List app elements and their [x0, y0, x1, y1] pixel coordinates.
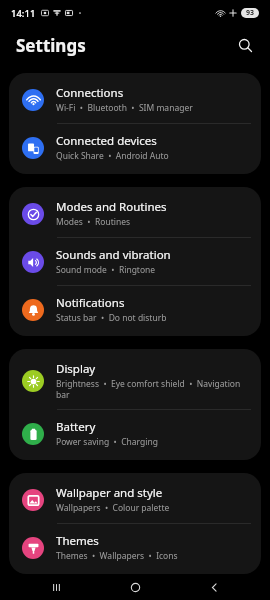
staticText: Display	[56, 361, 96, 377]
staticText: Settings	[16, 34, 86, 57]
staticText: Themes • Wallpapers • Icons	[56, 550, 178, 562]
staticText: Brightness • Eye comfort shield • Naviga…	[56, 378, 249, 400]
staticText: Notifications	[56, 295, 125, 311]
button[interactable]: Search	[231, 31, 259, 59]
staticText: Sounds and vibration	[56, 247, 171, 263]
staticText: Wallpapers • Colour palette	[56, 502, 170, 514]
staticText: Battery	[56, 419, 96, 435]
staticText: Wallpaper and style	[56, 485, 163, 501]
staticText: Wi-Fi • Bluetooth • SIM manager	[56, 102, 193, 114]
staticText: Sound mode • Ringtone	[56, 264, 156, 276]
button[interactable]: Connections	[9, 76, 261, 123]
staticText: 93	[246, 8, 255, 18]
button[interactable]: Sounds and vibration	[9, 238, 261, 285]
staticText: 14:11	[11, 7, 36, 20]
button[interactable]: Battery	[9, 410, 261, 457]
button[interactable]: Back	[191, 574, 237, 600]
button[interactable]: Recent apps	[33, 574, 79, 600]
button[interactable]: Home	[112, 574, 158, 600]
button[interactable]: Modes and Routines	[9, 190, 261, 237]
button[interactable]: Wallpaper and style	[9, 476, 261, 523]
staticText: Modes and Routines	[56, 199, 167, 215]
button[interactable]: Notifications	[9, 286, 261, 333]
staticText: Themes	[56, 533, 99, 549]
staticText: Connected devices	[56, 133, 157, 149]
staticText: Connections	[56, 85, 124, 101]
staticText: Quick Share • Android Auto	[56, 150, 169, 162]
button[interactable]: Connected devices	[9, 124, 261, 171]
staticText: Modes • Routines	[56, 216, 131, 228]
staticText: Status bar • Do not disturb	[56, 312, 167, 324]
staticText: Power saving • Charging	[56, 436, 158, 448]
button[interactable]: Display	[9, 352, 261, 409]
button[interactable]: Themes	[9, 524, 261, 571]
